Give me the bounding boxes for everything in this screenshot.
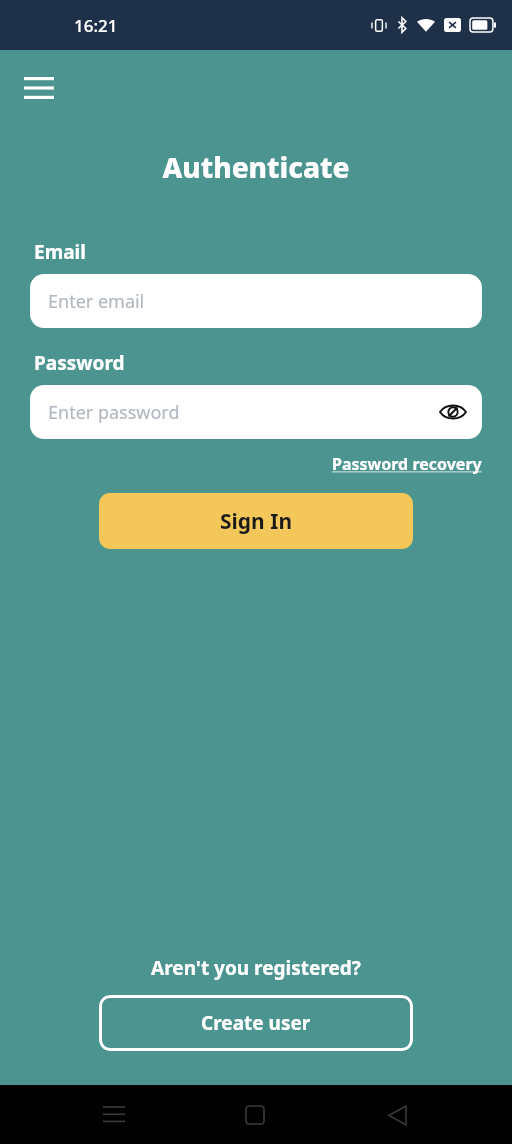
staticText: Password: [34, 350, 125, 376]
button[interactable]: Home: [228, 1088, 282, 1142]
staticText: 16:21: [74, 14, 118, 37]
staticText: Password recovery: [332, 453, 482, 475]
button[interactable]: Back: [370, 1088, 424, 1142]
staticText: Authenticate: [0, 148, 512, 186]
button[interactable]: Enter email: [30, 274, 482, 328]
staticText: Create user: [201, 1010, 311, 1036]
staticText: Enter email: [48, 289, 145, 314]
staticText: Sign In: [220, 507, 293, 536]
button[interactable]: Create user: [99, 995, 413, 1051]
staticText: Email: [34, 239, 86, 265]
staticText: Aren't you registered?: [0, 955, 512, 981]
button[interactable]: Recents: [87, 1088, 141, 1142]
button[interactable]: Enter password: [30, 385, 482, 439]
button[interactable]: Password recovery: [332, 453, 482, 475]
button[interactable]: Menu: [17, 66, 61, 110]
button[interactable]: Show password: [433, 392, 473, 432]
staticText: Enter password: [48, 400, 180, 425]
button[interactable]: Sign In: [99, 493, 413, 549]
